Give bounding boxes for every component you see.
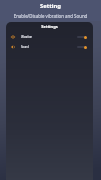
- button[interactable]: Sound: [6, 42, 93, 52]
- button[interactable]: Sound: [77, 44, 87, 50]
- staticText: Settings: [6, 24, 93, 29]
- staticText: Sound: [21, 45, 29, 49]
- staticText: Setting: [0, 2, 101, 10]
- staticText: Vibration: [21, 35, 33, 39]
- staticText: Enable/Disable vibration and Sound: [0, 13, 101, 19]
- button[interactable]: Vibration: [77, 34, 87, 40]
- button[interactable]: Vibration: [6, 32, 93, 42]
